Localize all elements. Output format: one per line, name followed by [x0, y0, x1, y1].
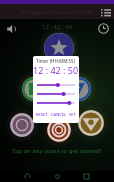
staticText: Timer (HH:MM:SS) — [36, 58, 75, 64]
staticText: Solfeggio Frequencies DX — [21, 8, 93, 16]
staticText: 12 : 42 : 50 — [33, 64, 79, 76]
staticText: Tap on any stone to get started! — [12, 147, 102, 155]
button[interactable]: Frequency 174 — [4, 107, 40, 143]
button[interactable]: Menu — [99, 5, 113, 19]
button[interactable] — [33, 90, 79, 98]
button[interactable]: Recents — [81, 171, 92, 182]
button[interactable]: CANCEL — [50, 111, 68, 118]
button[interactable]: Home — [52, 171, 63, 182]
button[interactable] — [33, 81, 79, 89]
button[interactable]: RESET — [35, 111, 49, 118]
button[interactable]: Frequency 741 — [72, 104, 110, 142]
button[interactable]: SET — [68, 111, 77, 118]
button[interactable]: Back — [22, 171, 33, 182]
button[interactable]: Frequency 396 — [16, 71, 52, 107]
button[interactable]: Set timer — [95, 20, 112, 37]
button[interactable]: Frequency 528 — [38, 27, 80, 69]
staticText: RESET — [36, 112, 48, 117]
button[interactable]: Frequency 417 — [61, 71, 97, 107]
button[interactable]: Volume — [3, 20, 20, 37]
button[interactable] — [33, 99, 79, 107]
button[interactable]: Frequency 285 — [41, 112, 77, 148]
staticText: 12 : 42 : 43 — [42, 23, 73, 31]
staticText: SET — [69, 112, 76, 117]
staticText: CANCEL — [51, 112, 67, 117]
